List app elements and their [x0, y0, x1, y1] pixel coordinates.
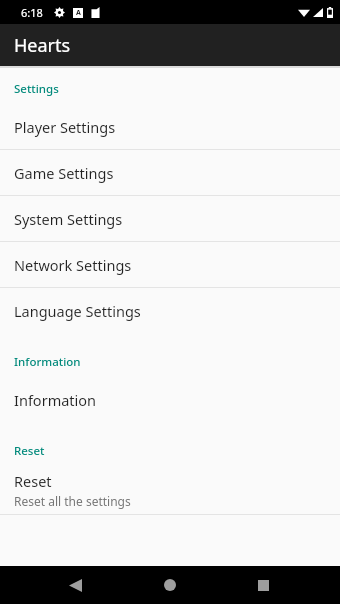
button[interactable]: Player Settings [0, 104, 340, 149]
button[interactable]: Information [0, 377, 340, 422]
staticText: 6:18 [21, 5, 43, 20]
staticText: Network Settings [14, 255, 132, 275]
button[interactable]: Recents [250, 572, 276, 598]
staticText: Settings [14, 81, 340, 97]
button[interactable]: Back [62, 572, 88, 598]
staticText: Reset [14, 471, 52, 491]
staticText: Information [14, 354, 340, 370]
staticText: Game Settings [14, 163, 114, 183]
staticText: Language Settings [14, 301, 141, 321]
staticText: System Settings [14, 209, 123, 229]
button[interactable]: System Settings [0, 196, 340, 241]
button[interactable]: Home [157, 572, 183, 598]
staticText: Information [14, 390, 97, 410]
staticText: Player Settings [14, 117, 116, 137]
button[interactable]: Reset [0, 466, 340, 514]
button[interactable]: Language Settings [0, 288, 340, 333]
staticText: Reset [14, 443, 340, 459]
staticText: A [76, 8, 81, 18]
button[interactable]: Network Settings [0, 242, 340, 287]
staticText: Hearts [14, 33, 71, 58]
button[interactable]: Game Settings [0, 150, 340, 195]
staticText: Reset all the settings [14, 493, 131, 509]
